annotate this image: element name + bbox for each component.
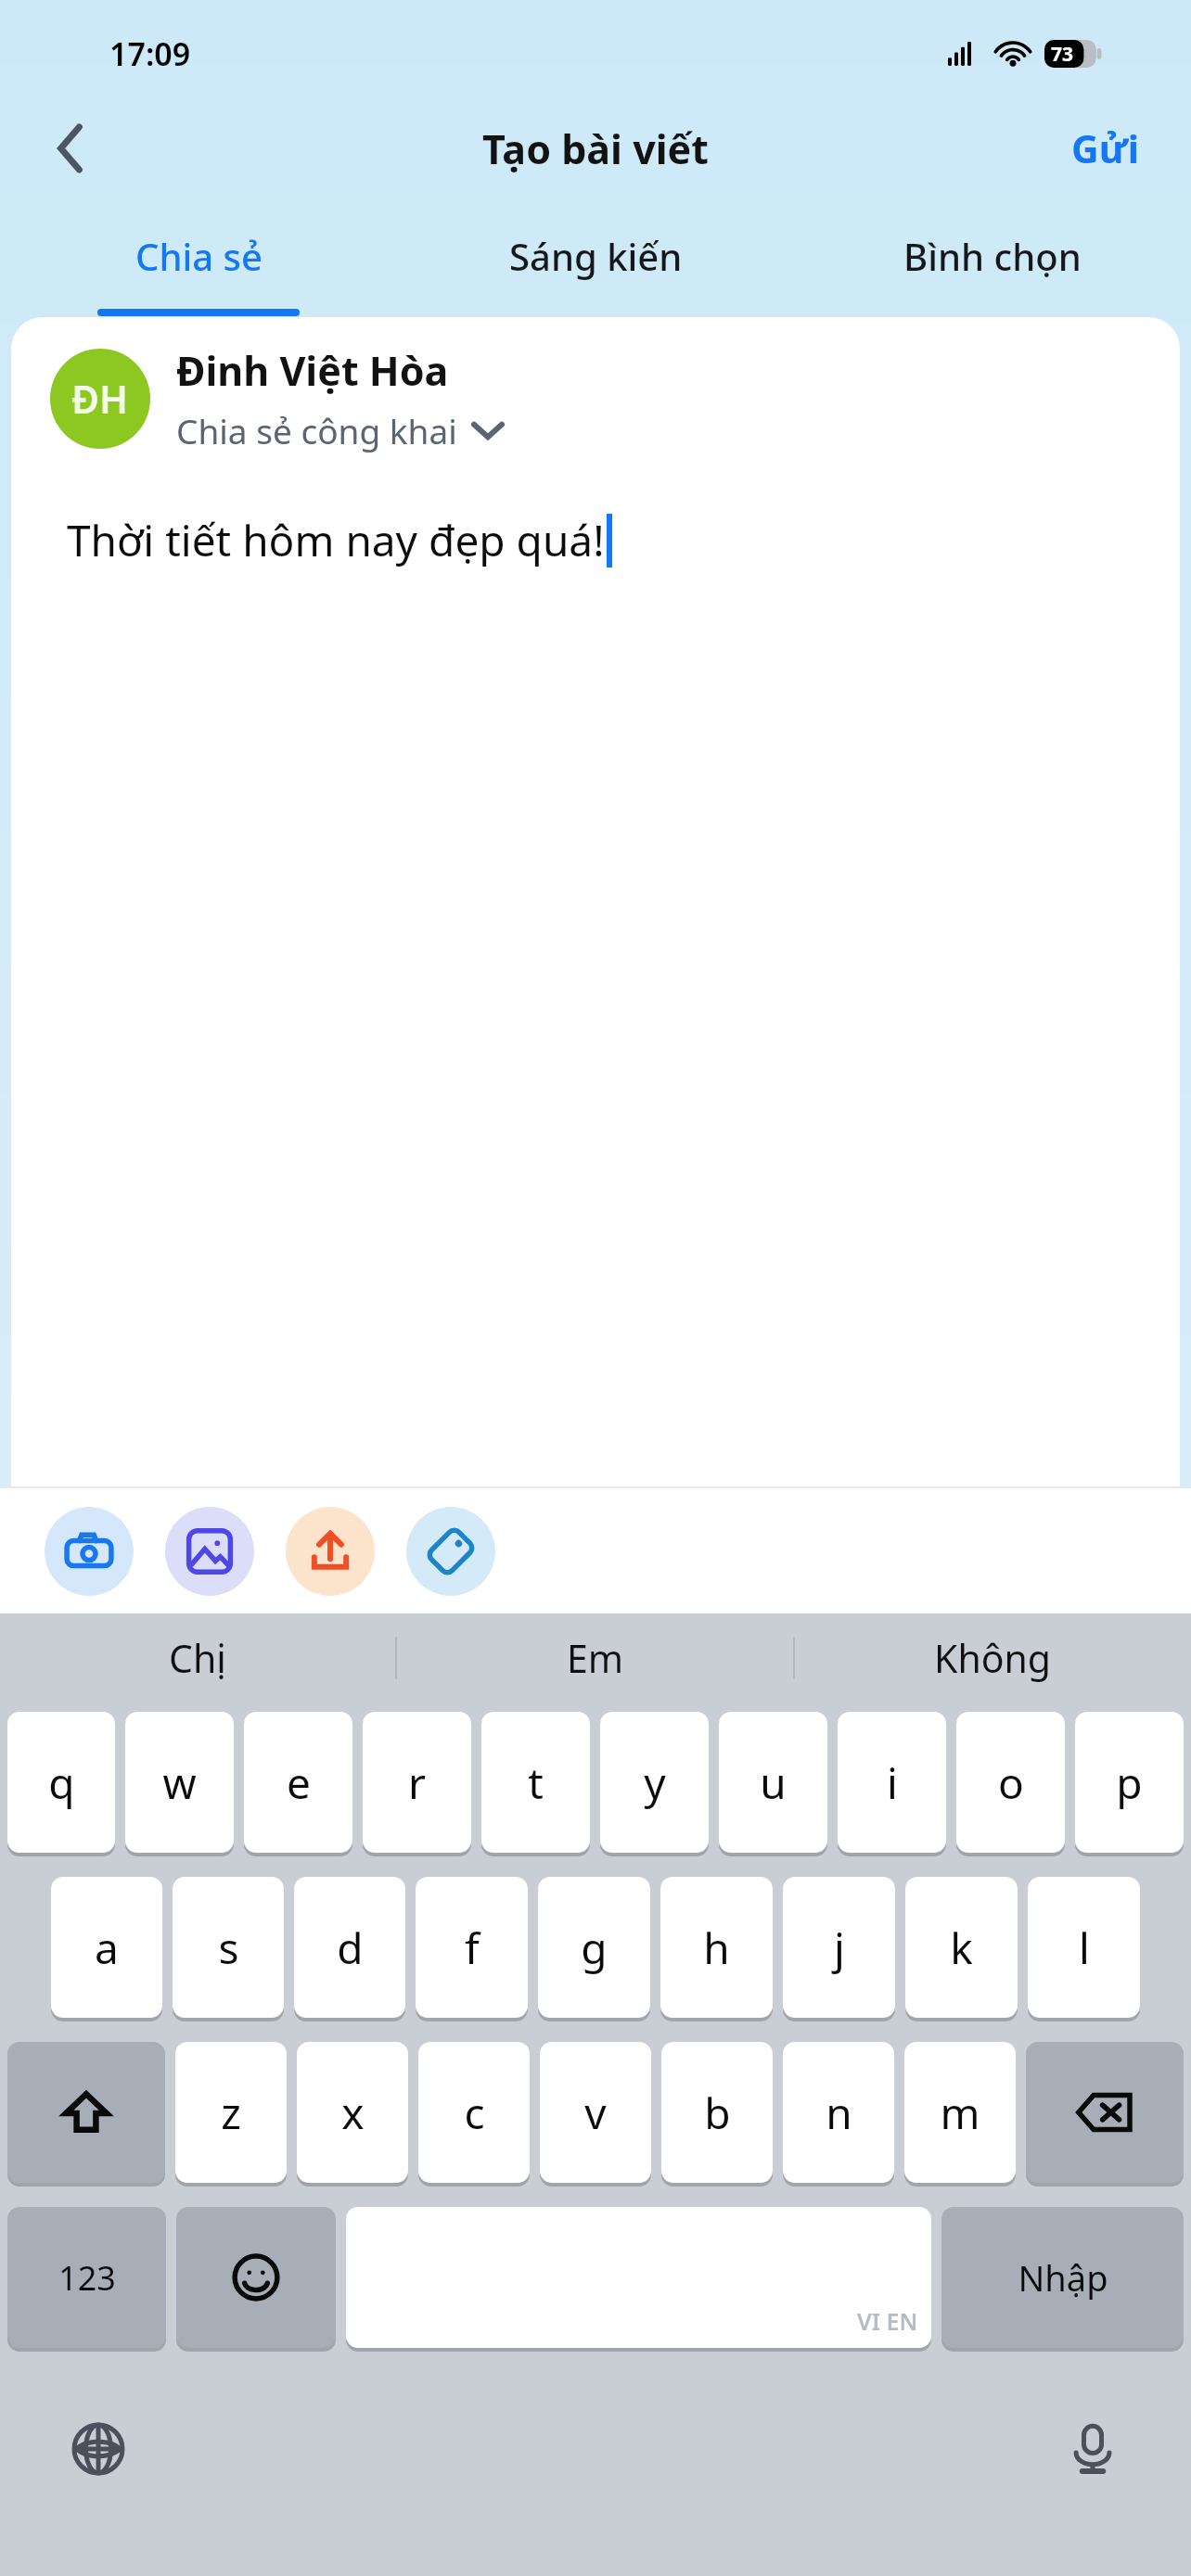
staticText: a bbox=[95, 1919, 119, 1977]
staticText: t bbox=[528, 1753, 544, 1812]
staticText: VI EN bbox=[857, 2305, 918, 2337]
button[interactable]: Chị bbox=[0, 1613, 395, 1702]
staticText: Chị bbox=[169, 1632, 226, 1684]
button[interactable]: Tag bbox=[406, 1507, 495, 1596]
button[interactable]: Chia sẻ bbox=[0, 195, 397, 317]
staticText: g bbox=[581, 1919, 608, 1977]
staticText: k bbox=[950, 1919, 973, 1977]
button[interactable]: Gửi bbox=[1062, 113, 1148, 184]
button[interactable]: g bbox=[538, 1877, 650, 2018]
button[interactable]: d bbox=[294, 1877, 405, 2018]
button[interactable]: s bbox=[173, 1877, 284, 2018]
staticText: z bbox=[221, 2084, 241, 2142]
staticText: d bbox=[337, 1919, 364, 1977]
button[interactable]: r bbox=[363, 1712, 471, 1853]
staticText: c bbox=[464, 2084, 485, 2142]
staticText: Chia sẻ công khai bbox=[176, 407, 457, 453]
button[interactable]: h bbox=[660, 1877, 773, 2018]
staticText: b bbox=[704, 2084, 731, 2142]
button[interactable]: t bbox=[481, 1712, 590, 1853]
button[interactable]: n bbox=[783, 2042, 894, 2183]
staticText: h bbox=[703, 1919, 730, 1977]
button[interactable]: 123 bbox=[7, 2207, 166, 2348]
button[interactable]: i bbox=[838, 1712, 946, 1853]
button[interactable]: Change keyboard bbox=[54, 2404, 143, 2493]
button[interactable]: Bình chọn bbox=[794, 195, 1191, 317]
staticText: q bbox=[48, 1753, 75, 1812]
staticText: x bbox=[341, 2084, 365, 2142]
button[interactable]: e bbox=[244, 1712, 352, 1853]
button[interactable]: Không bbox=[795, 1613, 1191, 1702]
staticText: Gửi bbox=[1071, 122, 1139, 174]
button[interactable]: Sáng kiến bbox=[397, 195, 794, 317]
button[interactable]: w bbox=[125, 1712, 234, 1853]
button[interactable]: Dictate bbox=[1048, 2404, 1137, 2493]
staticText: r bbox=[408, 1753, 426, 1812]
staticText: p bbox=[1116, 1753, 1143, 1812]
staticText: Em bbox=[567, 1632, 624, 1684]
button[interactable]: j bbox=[783, 1877, 895, 2018]
button[interactable]: Nhập bbox=[941, 2207, 1184, 2348]
button[interactable]: a bbox=[51, 1877, 162, 2018]
button[interactable]: m bbox=[904, 2042, 1016, 2183]
button[interactable]: f bbox=[416, 1877, 528, 2018]
button[interactable]: Space bbox=[346, 2207, 931, 2348]
button[interactable]: q bbox=[7, 1712, 115, 1853]
staticText: y bbox=[644, 1753, 666, 1812]
staticText: w bbox=[162, 1753, 197, 1812]
staticText: j bbox=[834, 1919, 845, 1977]
button[interactable]: Backspace bbox=[1026, 2042, 1184, 2183]
staticText: s bbox=[218, 1919, 239, 1977]
staticText: Sáng kiến bbox=[509, 231, 683, 281]
button[interactable]: Camera bbox=[45, 1507, 134, 1596]
button[interactable]: x bbox=[297, 2042, 408, 2183]
staticText: l bbox=[1079, 1919, 1090, 1977]
button[interactable]: u bbox=[719, 1712, 827, 1853]
staticText: 17:09 bbox=[109, 32, 191, 75]
button[interactable]: Shift bbox=[7, 2042, 165, 2183]
button[interactable]: ĐH bbox=[50, 343, 1180, 453]
staticText: Thời tiết hôm nay đẹp quá! bbox=[67, 511, 605, 569]
staticText: e bbox=[287, 1753, 311, 1812]
staticText: Đinh Việt Hòa bbox=[176, 343, 449, 398]
staticText: Không bbox=[934, 1632, 1052, 1684]
button[interactable]: l bbox=[1028, 1877, 1140, 2018]
button[interactable]: p bbox=[1075, 1712, 1184, 1853]
staticText: 73 bbox=[1051, 41, 1074, 68]
staticText: Nhập bbox=[1018, 2253, 1108, 2302]
button[interactable]: Emoji bbox=[176, 2207, 336, 2348]
staticText: n bbox=[826, 2084, 852, 2142]
button[interactable]: o bbox=[956, 1712, 1065, 1853]
button[interactable]: Back bbox=[32, 109, 109, 187]
staticText: Chia sẻ bbox=[135, 231, 263, 281]
staticText: v bbox=[584, 2084, 607, 2142]
staticText: o bbox=[998, 1753, 1024, 1812]
button[interactable]: Em bbox=[397, 1613, 793, 1702]
button[interactable]: b bbox=[661, 2042, 773, 2183]
staticText: ĐH bbox=[71, 373, 129, 425]
button[interactable]: Upload bbox=[286, 1507, 375, 1596]
button[interactable]: k bbox=[905, 1877, 1018, 2018]
button[interactable]: Photos bbox=[165, 1507, 254, 1596]
staticText: Tạo bài viết bbox=[482, 121, 709, 176]
staticText: m bbox=[940, 2084, 980, 2142]
button[interactable]: c bbox=[418, 2042, 530, 2183]
staticText: u bbox=[760, 1753, 787, 1812]
staticText: 123 bbox=[58, 2255, 116, 2301]
staticText: Bình chọn bbox=[903, 231, 1082, 281]
button[interactable]: z bbox=[175, 2042, 287, 2183]
button[interactable]: v bbox=[540, 2042, 651, 2183]
button[interactable]: y bbox=[600, 1712, 709, 1853]
staticText: f bbox=[465, 1919, 480, 1977]
staticText: i bbox=[887, 1753, 898, 1812]
